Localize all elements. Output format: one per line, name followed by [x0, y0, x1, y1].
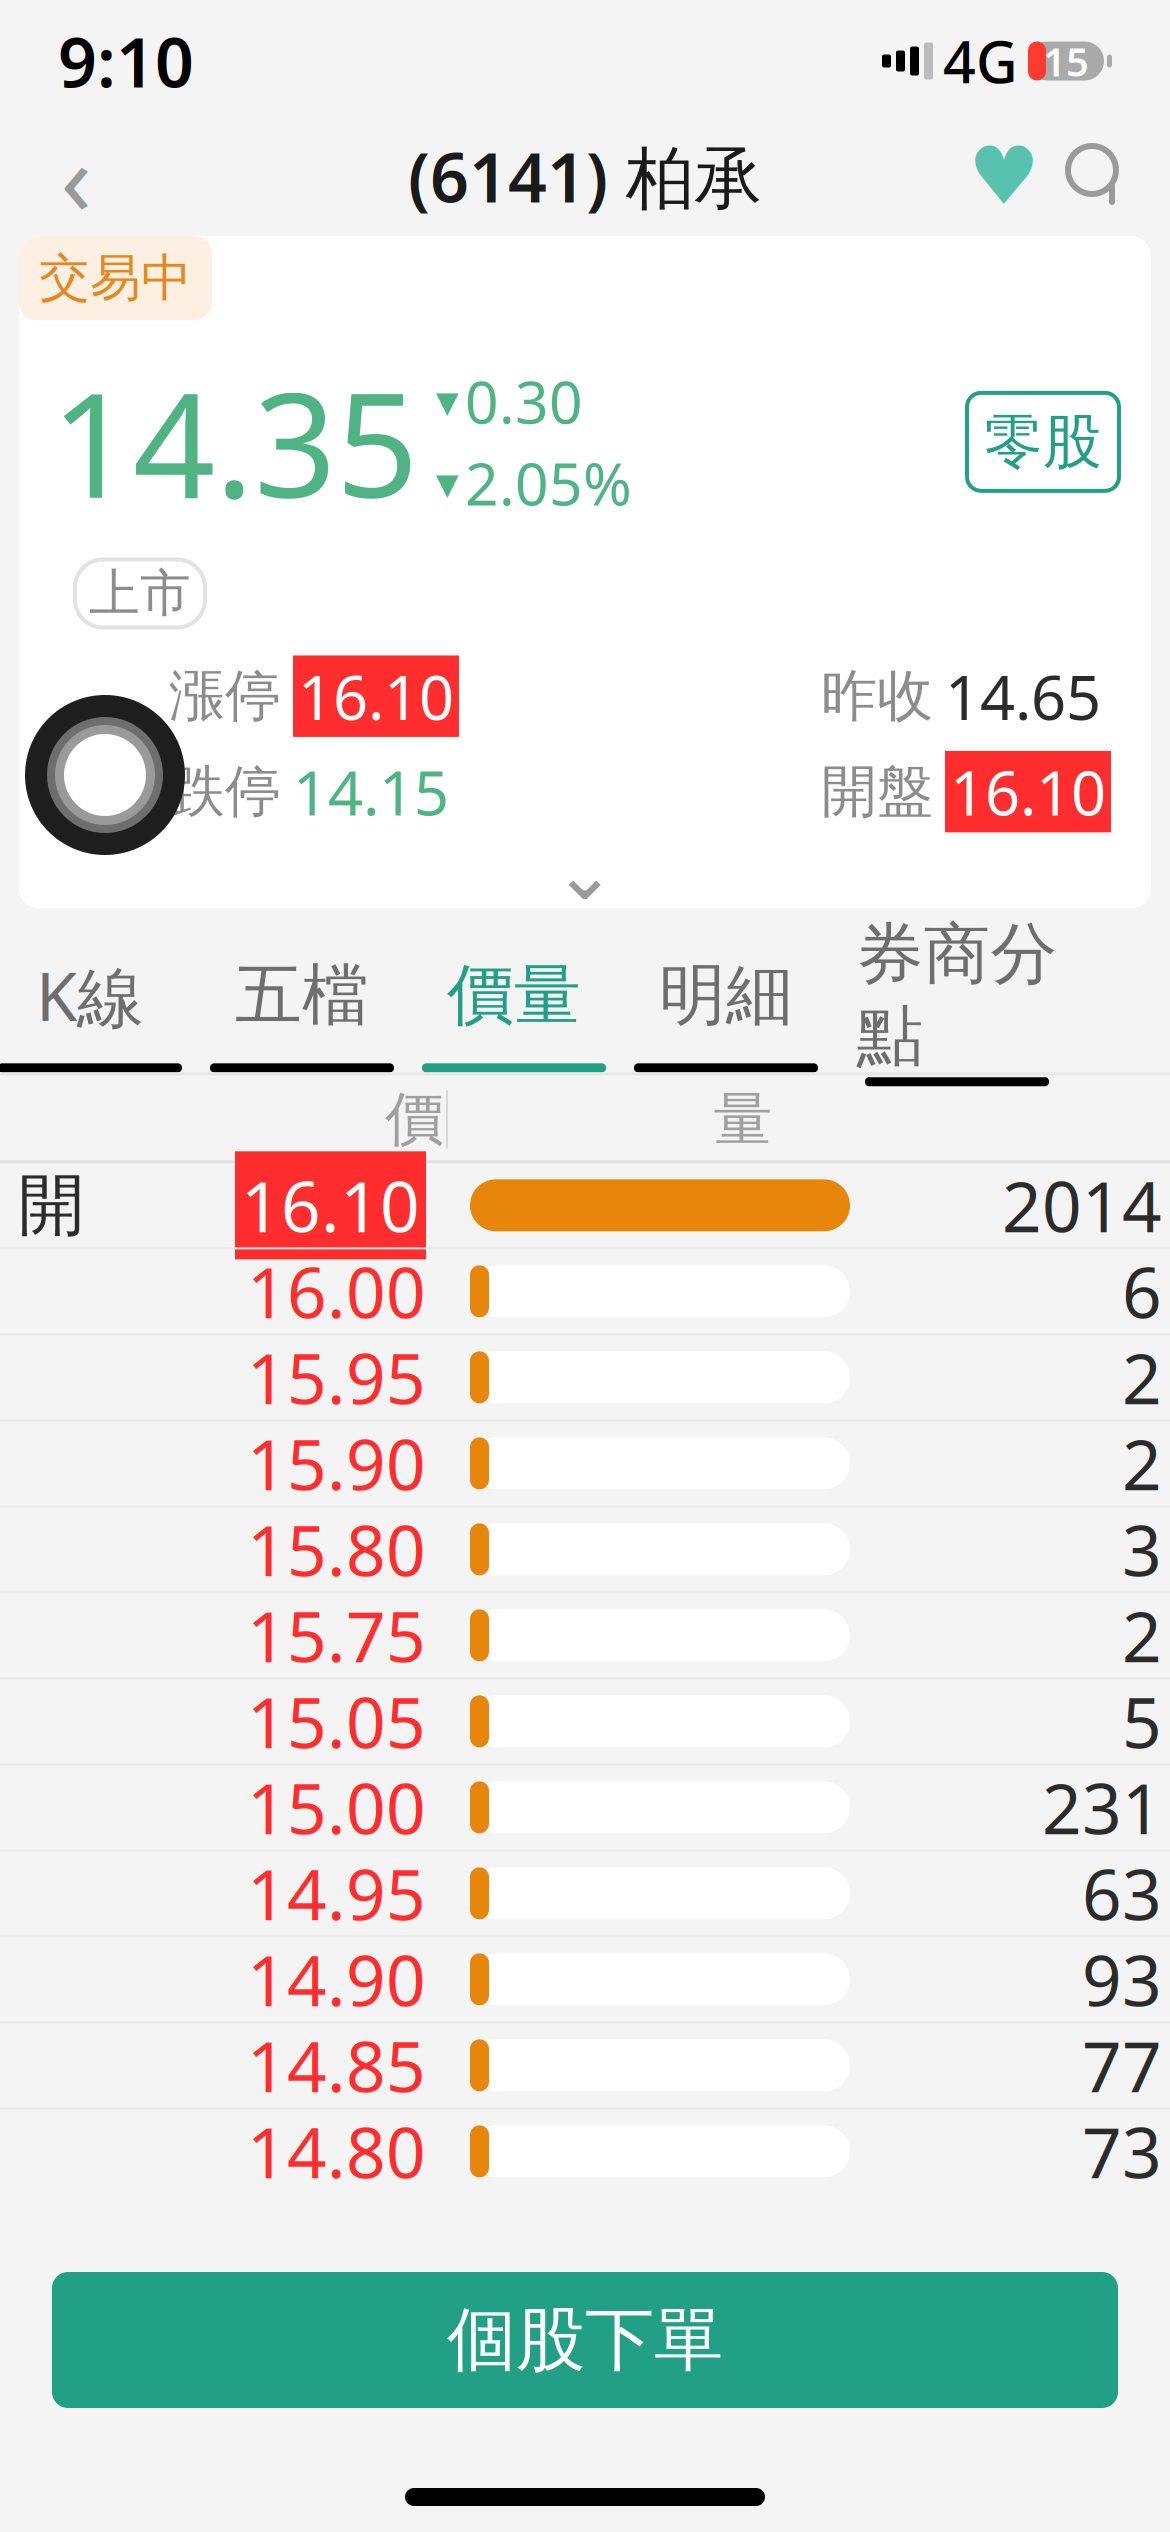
staticText: 開	[18, 1164, 85, 1246]
staticText: 14.85	[247, 2019, 426, 2111]
staticText: 6	[1122, 1245, 1162, 1337]
staticText: 14.80	[247, 2105, 426, 2197]
staticText: 開盤	[821, 757, 933, 826]
staticText: 9:10	[58, 16, 194, 106]
staticText: ‹	[60, 109, 91, 243]
staticText: 15.90	[247, 1417, 426, 1509]
staticText: 15.75	[247, 1589, 426, 1681]
staticText: 93	[1082, 1933, 1162, 2025]
button[interactable]: Add to favorites	[958, 130, 1050, 222]
staticText: 明細	[659, 954, 793, 1036]
staticText: 14.95	[247, 1847, 426, 1939]
staticText: 漲停	[169, 662, 281, 731]
staticText: 15.95	[247, 1331, 426, 1423]
staticText: 量	[713, 1083, 772, 1155]
staticText: 上市	[89, 562, 191, 624]
staticText: (6141) 柏承	[408, 131, 762, 221]
button[interactable]: 明細	[620, 927, 832, 1072]
staticText: 15.05	[247, 1675, 426, 1767]
staticText: 2.05%	[465, 444, 632, 522]
staticText: 16.10	[298, 655, 454, 737]
button[interactable]: Back	[28, 128, 124, 224]
staticText: 價	[385, 1083, 444, 1155]
staticText: ♥	[968, 131, 1040, 221]
staticText: K線	[36, 951, 144, 1040]
staticText: 231	[1042, 1761, 1162, 1853]
staticText: 2	[1122, 1417, 1162, 1509]
staticText: 2014	[1002, 1159, 1162, 1251]
button[interactable]: Search	[1050, 130, 1142, 222]
staticText: 16.10	[241, 1159, 420, 1251]
staticText: 16.10	[950, 751, 1106, 832]
button[interactable]: 個股下單	[52, 2272, 1118, 2408]
staticText: 2	[1122, 1589, 1162, 1681]
staticText: 15.80	[247, 1503, 426, 1595]
button[interactable]: 券商分點	[832, 927, 1082, 1072]
staticText: 73	[1082, 2105, 1162, 2197]
staticText: 價量	[447, 954, 581, 1036]
staticText: 個股下單	[447, 2297, 723, 2383]
staticText: 2	[1122, 1331, 1162, 1423]
staticText: 五檔	[235, 954, 369, 1036]
staticText: 14.15	[293, 751, 449, 832]
button[interactable]: 價量	[408, 927, 620, 1072]
staticText: 跌停	[169, 757, 281, 826]
staticText: 3	[1122, 1503, 1162, 1595]
staticText: ▾	[436, 457, 459, 509]
staticText: 15.00	[247, 1761, 426, 1853]
staticText: 昨收	[821, 662, 933, 731]
staticText: 77	[1082, 2019, 1162, 2111]
staticText: 63	[1082, 1847, 1162, 1939]
button[interactable]: 零股	[967, 393, 1119, 491]
button[interactable]: 五檔	[196, 927, 408, 1072]
button[interactable]: K線	[0, 927, 196, 1072]
staticText: 4G	[943, 23, 1018, 99]
staticText: 券商分點	[856, 913, 1057, 1077]
staticText: 交易中	[39, 247, 192, 309]
staticText: 14.65	[945, 655, 1101, 737]
staticText: 14.35	[51, 346, 418, 537]
staticText: 0.30	[465, 362, 583, 440]
staticText: 16.00	[247, 1245, 426, 1337]
staticText: ⌄	[553, 831, 616, 916]
button[interactable]: Expand details	[485, 838, 685, 908]
staticText: 零股	[984, 406, 1102, 478]
staticText: 5	[1122, 1675, 1162, 1767]
staticText: 15	[1043, 34, 1089, 87]
staticText: 14.90	[247, 1933, 426, 2025]
staticText: ▾	[436, 375, 459, 427]
button[interactable]: 上市	[75, 559, 205, 627]
